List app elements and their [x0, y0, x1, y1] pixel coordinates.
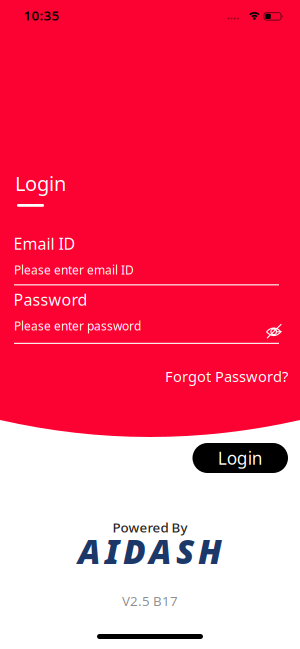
staticText: Email ID: [13, 233, 75, 254]
staticText: AIDASH: [78, 529, 222, 573]
staticText: Please enter password: [14, 318, 141, 334]
button[interactable]: Please enter password: [14, 318, 279, 344]
staticText: Please enter email ID: [14, 262, 134, 278]
button[interactable]: Login: [192, 443, 288, 473]
staticText: Forgot Password?: [165, 366, 288, 386]
button[interactable]: [265, 324, 282, 340]
staticText: Login: [218, 446, 263, 469]
staticText: Powered By: [112, 518, 187, 536]
staticText: Password: [13, 289, 87, 310]
staticText: 10:35: [23, 6, 59, 24]
staticText: V2.5 B17: [122, 592, 178, 610]
staticText: Login: [15, 170, 66, 197]
button[interactable]: Please enter email ID: [14, 262, 279, 286]
button[interactable]: Forgot Password?: [165, 366, 288, 386]
